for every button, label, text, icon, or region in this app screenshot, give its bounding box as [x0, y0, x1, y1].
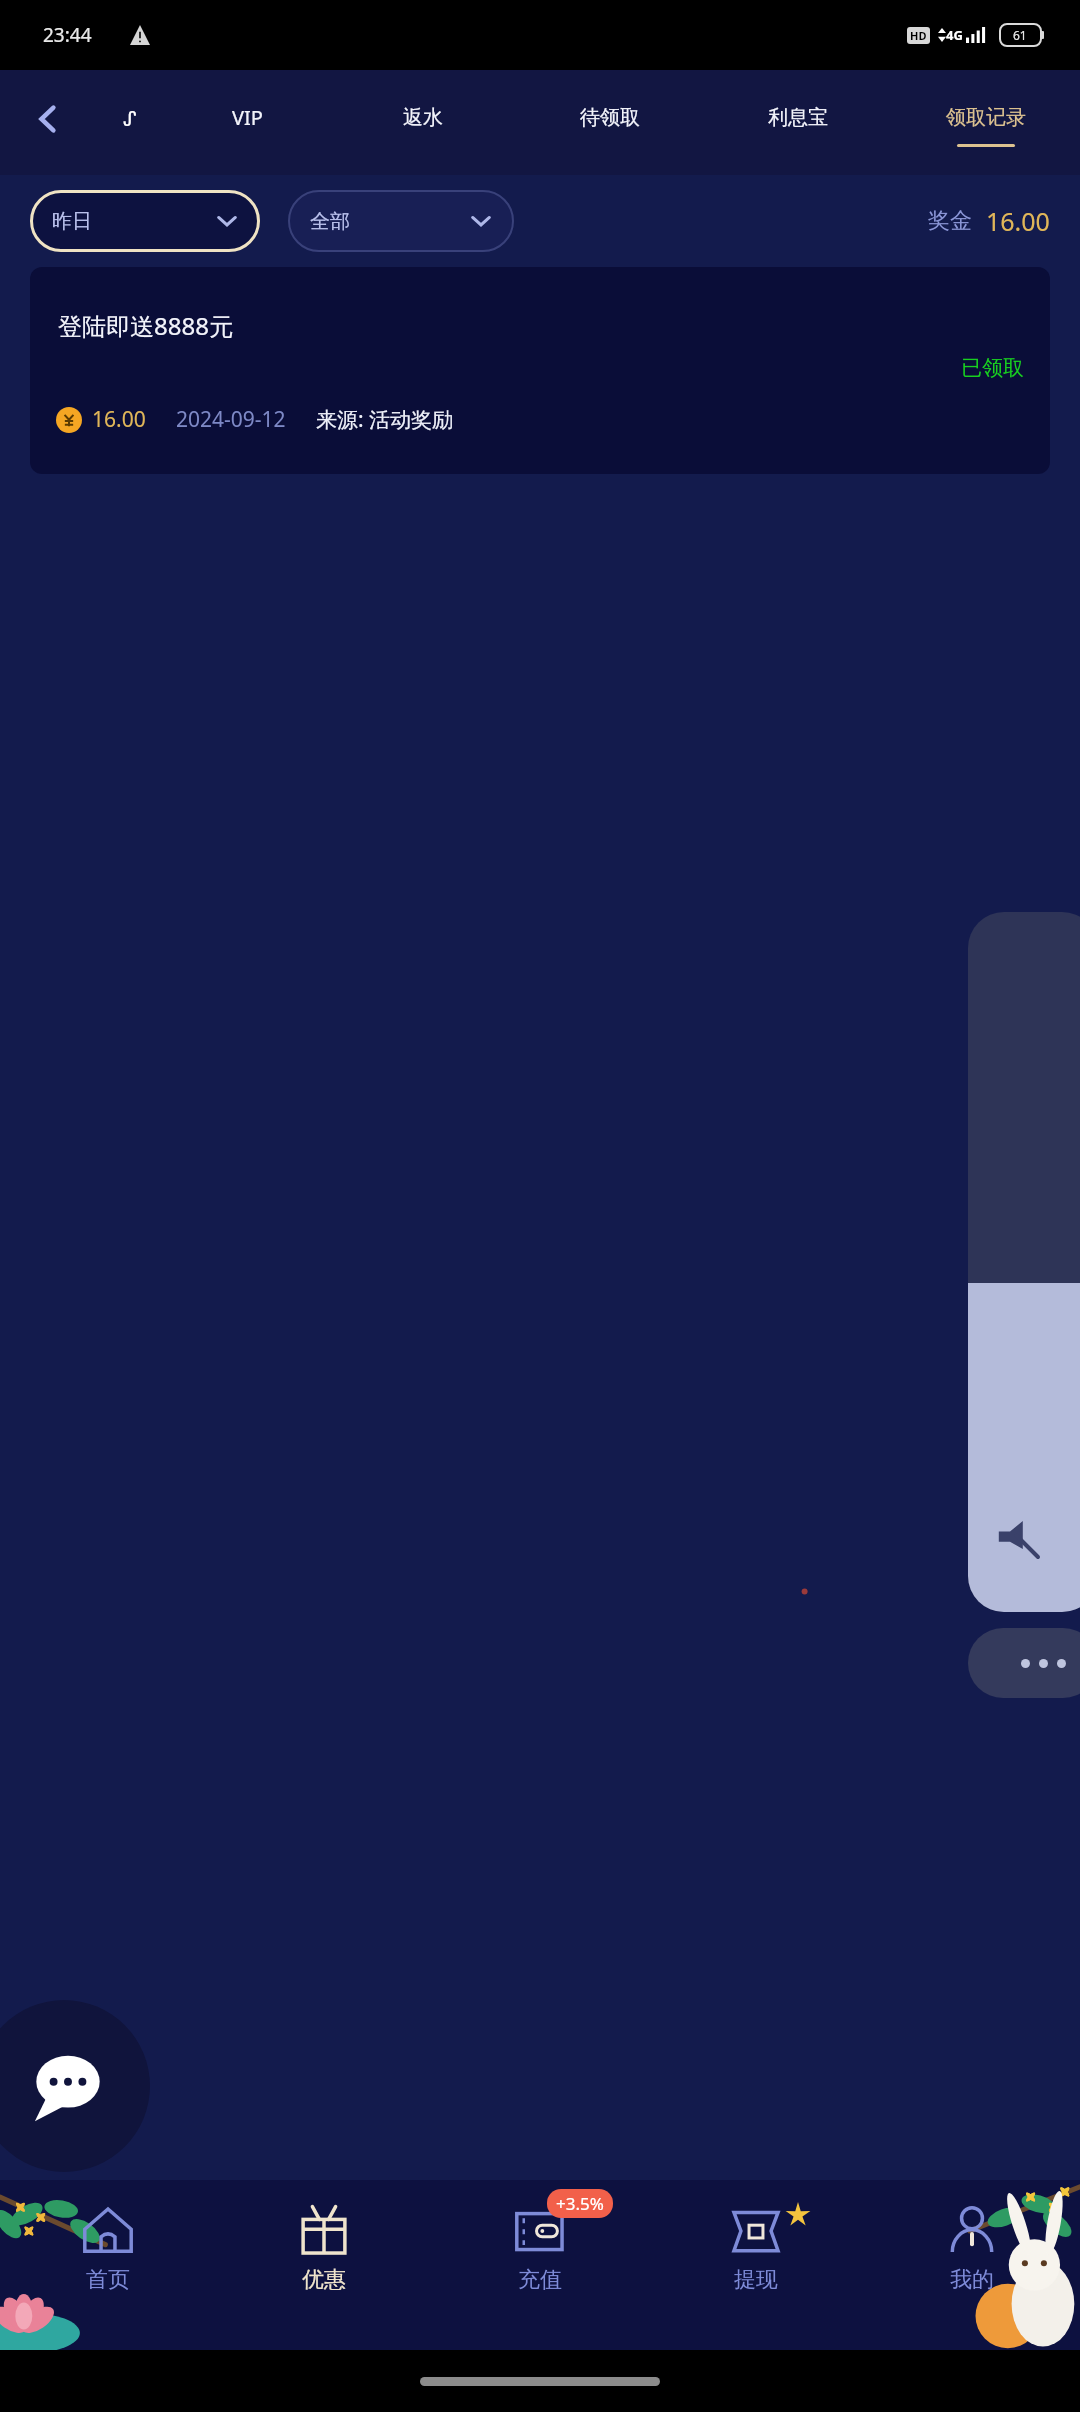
- staticText: VIP: [232, 104, 263, 131]
- button[interactable]: +3.5%: [432, 2180, 648, 2350]
- staticText: HD: [910, 28, 927, 43]
- button[interactable]: Back: [0, 70, 95, 175]
- button[interactable]: Volume: [968, 912, 1080, 1612]
- button[interactable]: ᔑ: [95, 70, 165, 175]
- staticText: 返水: [403, 105, 443, 130]
- button[interactable]: 待领取: [516, 70, 704, 175]
- staticText: 领取记录: [946, 105, 1026, 130]
- button[interactable]: More options: [968, 1628, 1080, 1698]
- button[interactable]: 全部: [288, 190, 514, 252]
- staticText: 已领取: [961, 355, 1024, 381]
- staticText: 我的: [950, 2266, 994, 2294]
- staticText: 来源: 活动奖励: [316, 405, 454, 434]
- staticText: 优惠: [302, 2266, 346, 2294]
- staticText: 全部: [310, 209, 350, 234]
- button[interactable]: 我的: [864, 2180, 1080, 2350]
- button[interactable]: 登陆即送8888元: [30, 267, 1050, 474]
- button[interactable]: 优惠: [216, 2180, 432, 2350]
- staticText: 16.00: [92, 405, 146, 434]
- staticText: 利息宝: [768, 105, 828, 130]
- button[interactable]: 昨日: [30, 190, 260, 252]
- button[interactable]: 首页: [0, 2180, 216, 2350]
- staticText: 昨日: [52, 209, 92, 234]
- staticText: 4G: [946, 26, 963, 44]
- staticText: 登陆即送8888元: [58, 309, 233, 342]
- button[interactable]: Customer service chat: [0, 2000, 150, 2172]
- staticText: 2024-09-12: [176, 405, 286, 434]
- button[interactable]: VIP: [165, 70, 329, 175]
- staticText: 61: [1013, 27, 1027, 43]
- staticText: 16.00: [986, 204, 1050, 238]
- staticText: 充值: [518, 2266, 562, 2294]
- staticText: 提现: [734, 2266, 778, 2294]
- button[interactable]: 利息宝: [704, 70, 892, 175]
- staticText: 首页: [86, 2266, 130, 2294]
- staticText: 23:44: [43, 22, 92, 48]
- button[interactable]: 领取记录: [892, 70, 1080, 175]
- staticText: 待领取: [580, 105, 640, 130]
- staticText: +3.5%: [556, 2192, 604, 2215]
- button[interactable]: 返水: [329, 70, 516, 175]
- staticText: ᔑ: [123, 108, 137, 130]
- staticText: 奖金: [928, 207, 972, 235]
- button[interactable]: 提现: [648, 2180, 864, 2350]
